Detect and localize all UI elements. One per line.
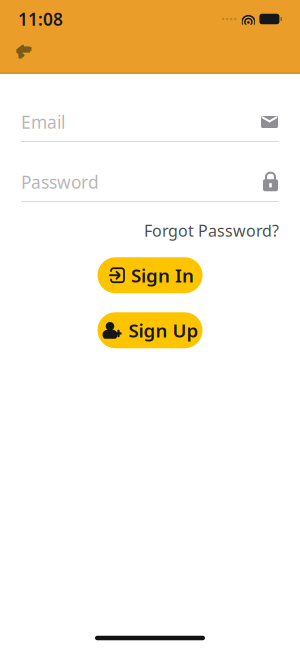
button[interactable]: Sign In bbox=[97, 257, 202, 293]
button[interactable]: Back bbox=[7, 34, 41, 68]
staticText: Email bbox=[21, 110, 65, 133]
button[interactable]: Sign Up bbox=[97, 312, 202, 348]
staticText: Sign Up bbox=[128, 318, 198, 343]
staticText: Password bbox=[21, 170, 99, 193]
staticText: Forgot Password? bbox=[144, 220, 279, 241]
staticText: 11:08 bbox=[18, 7, 63, 30]
staticText: Sign In bbox=[131, 263, 194, 288]
button[interactable]: Forgot Password? bbox=[144, 220, 279, 241]
